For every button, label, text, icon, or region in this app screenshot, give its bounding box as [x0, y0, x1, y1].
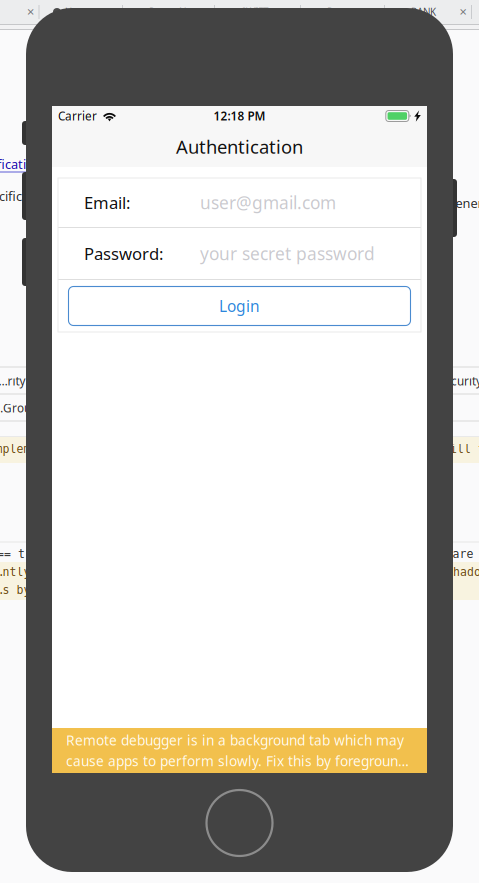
staticText: Carrier [58, 108, 97, 124]
staticText: Password: [84, 242, 163, 265]
staticText: your secret password [200, 242, 375, 265]
staticText: Security [438, 373, 479, 389]
staticText: shadowed [446, 565, 479, 579]
staticText: Email: [84, 191, 130, 214]
staticText: Authentication [176, 134, 303, 159]
staticText: are [452, 547, 473, 561]
staticText: ✕ [26, 6, 34, 18]
staticText: user@gmail.com [200, 191, 336, 214]
staticText: React Na… [149, 5, 194, 19]
staticText: …ntly [0, 565, 30, 579]
staticText: SWIFT doc [241, 5, 280, 19]
staticText: ✕ [372, 6, 380, 18]
staticText: …Group [0, 400, 38, 416]
staticText: Remote debugger is in a background tab w… [66, 731, 404, 749]
staticText: …== true [0, 547, 46, 561]
staticText: ✕ [288, 6, 296, 18]
staticText: User G… [65, 5, 102, 19]
staticText: ✕ [459, 6, 467, 18]
staticText: …rity [0, 373, 25, 389]
button[interactable]: Login [68, 286, 410, 325]
staticText: cause apps to perform slowly. Fix this b… [66, 751, 409, 770]
staticText: 12:18 PM [213, 108, 265, 124]
staticText: will throw [443, 442, 479, 456]
staticText: ✕ [202, 6, 210, 18]
staticText: ✕ [110, 6, 118, 18]
staticText: …s by [0, 583, 30, 597]
staticText: Docume… [327, 5, 364, 19]
staticText: templates are generated [362, 194, 479, 212]
staticText: …specification options [0, 155, 91, 173]
staticText: Login [219, 295, 260, 317]
staticText: …specification templates [0, 187, 116, 205]
staticText: RANK [411, 5, 436, 19]
staticText: …implementation [0, 442, 86, 456]
